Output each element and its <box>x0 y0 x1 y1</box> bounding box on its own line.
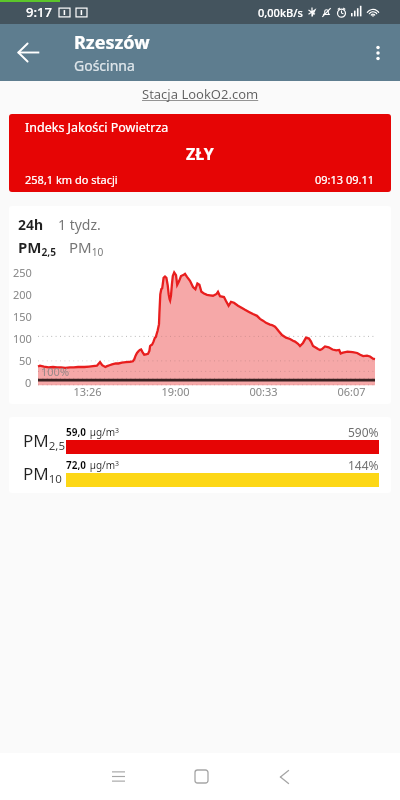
button[interactable]: 24h <box>18 215 44 234</box>
staticText: 59,0 µg/m3 <box>66 421 120 440</box>
button[interactable]: PM10 <box>69 237 104 259</box>
button[interactable]: Indeks Jakości Powietrza <box>9 114 391 192</box>
staticText: 590% <box>348 424 379 440</box>
staticText: 09:13 09.11 <box>315 172 375 187</box>
staticText: 0,00kB/s <box>258 5 303 20</box>
button[interactable]: PM2,5 <box>18 237 57 259</box>
staticText: PM2,5 <box>23 429 66 454</box>
staticText: PM10 <box>23 462 62 487</box>
button[interactable]: More options <box>356 24 400 81</box>
staticText: Gościnna <box>74 56 135 75</box>
button[interactable]: Back <box>260 753 308 800</box>
staticText: 72,0 µg/m3 <box>66 454 120 473</box>
button[interactable]: Stacja LookO2.com <box>142 85 259 103</box>
staticText: Indeks Jakości Powietrza <box>25 119 169 136</box>
button[interactable]: Home <box>177 753 225 800</box>
button[interactable]: 1 tydz. <box>58 215 101 234</box>
staticText: 258,1 km do stacji <box>25 172 118 187</box>
staticText: 144% <box>348 457 379 473</box>
staticText: 9:17 <box>26 3 52 21</box>
button[interactable]: Back <box>0 24 57 81</box>
staticText: ZŁY <box>186 143 214 165</box>
staticText: Rzeszów <box>74 30 150 55</box>
button[interactable]: Recent apps <box>94 753 142 800</box>
